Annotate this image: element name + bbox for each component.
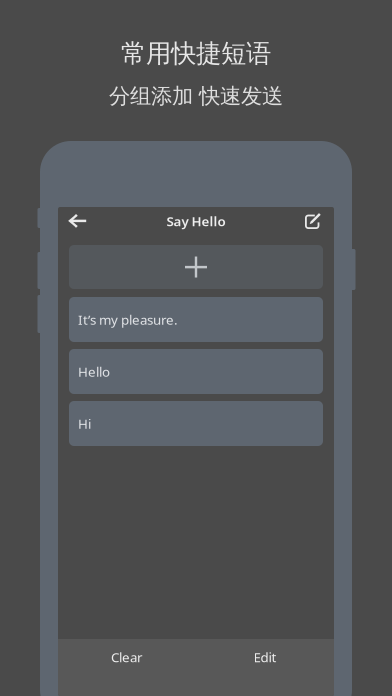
button[interactable]: Clear bbox=[58, 639, 196, 675]
staticText: 分组添加 快速发送 bbox=[109, 83, 283, 109]
staticText: 常用快捷短语 bbox=[121, 38, 271, 69]
staticText: Hi bbox=[78, 415, 91, 432]
button[interactable]: Hi bbox=[69, 401, 323, 446]
button[interactable]: Compose bbox=[298, 207, 328, 235]
button[interactable]: It’s my pleasure. bbox=[69, 297, 323, 342]
staticText: Clear bbox=[111, 648, 143, 666]
button[interactable]: Add phrase bbox=[69, 245, 323, 289]
staticText: Edit bbox=[253, 648, 276, 666]
staticText: Hello bbox=[78, 363, 110, 380]
button[interactable]: Back bbox=[63, 207, 93, 235]
button[interactable]: Hello bbox=[69, 349, 323, 394]
staticText: Say Hello bbox=[166, 212, 225, 230]
staticText: It’s my pleasure. bbox=[78, 311, 178, 328]
button[interactable]: Edit bbox=[196, 639, 334, 675]
